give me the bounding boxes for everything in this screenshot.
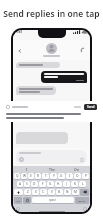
- button[interactable]: Back: [15, 46, 24, 55]
- button[interactable]: A: [17, 181, 23, 187]
- button[interactable]: U: [58, 173, 65, 179]
- button[interactable]: Send: [3, 101, 100, 122]
- staticText: On: [74, 167, 79, 172]
- button[interactable]: B: [56, 189, 63, 195]
- button[interactable]: C: [40, 189, 47, 195]
- staticText: A: [19, 182, 22, 186]
- button[interactable]: T: [42, 173, 49, 179]
- staticText: 123: [16, 199, 21, 202]
- staticText: B: [58, 190, 61, 194]
- button[interactable]: L: [79, 181, 86, 187]
- button[interactable]: D: [31, 181, 38, 187]
- staticText: U: [60, 174, 63, 178]
- staticText: O: [76, 174, 79, 178]
- button[interactable]: Send: [79, 157, 84, 162]
- button[interactable]: S: [24, 181, 30, 187]
- staticText: 9:41: [16, 30, 23, 34]
- button[interactable]: M: [72, 189, 79, 195]
- button[interactable]: G: [47, 181, 54, 187]
- staticText: K: [74, 182, 76, 186]
- button[interactable]: [14, 189, 23, 195]
- staticText: space: [49, 198, 57, 202]
- staticText: G: [49, 182, 52, 186]
- button[interactable]: I: [66, 173, 73, 179]
- button[interactable]: Y: [50, 173, 57, 179]
- button[interactable]: return: [75, 197, 89, 203]
- button[interactable]: N: [64, 189, 71, 195]
- staticText: R: [37, 174, 39, 178]
- staticText: Y: [53, 174, 55, 178]
- button[interactable]: R: [35, 173, 41, 179]
- button[interactable]: space: [32, 197, 74, 203]
- staticText: C: [42, 190, 45, 194]
- button[interactable]: J: [63, 181, 70, 187]
- button[interactable]: K: [71, 181, 78, 187]
- button[interactable]: H: [55, 181, 62, 187]
- button[interactable]: V: [48, 189, 55, 195]
- button[interactable]: F: [39, 181, 46, 187]
- button[interactable]: X: [32, 189, 39, 195]
- staticText: return: [78, 199, 86, 202]
- button[interactable]: I: [14, 166, 39, 173]
- button[interactable]: P: [82, 173, 89, 179]
- staticText: I: [26, 167, 28, 172]
- staticText: Send replies in one tap: [0, 8, 103, 20]
- button[interactable]: Call: [79, 46, 88, 55]
- staticText: W: [23, 174, 26, 178]
- button[interactable]: Send: [84, 104, 97, 110]
- button[interactable]: O: [74, 173, 81, 179]
- button[interactable]: [23, 197, 31, 203]
- button[interactable]: The: [39, 166, 64, 173]
- staticText: H: [57, 182, 60, 186]
- staticText: S: [26, 182, 28, 186]
- button[interactable]: Send: [16, 150, 87, 164]
- staticText: L: [82, 182, 84, 186]
- button[interactable]: Q: [14, 173, 20, 179]
- button[interactable]: E: [28, 173, 34, 179]
- button[interactable]: On: [64, 166, 89, 173]
- staticText: M: [74, 190, 77, 194]
- staticText: J: [66, 182, 67, 186]
- staticText: N: [66, 190, 69, 194]
- staticText: P: [85, 174, 87, 178]
- staticText: Z: [27, 190, 29, 194]
- staticText: T: [45, 174, 47, 178]
- staticText: The: [49, 167, 55, 172]
- staticText: X: [35, 190, 37, 194]
- staticText: V: [51, 190, 53, 194]
- staticText: Send: [87, 105, 95, 109]
- button[interactable]: Z: [24, 189, 31, 195]
- button[interactable]: 123: [14, 197, 22, 203]
- staticText: D: [33, 182, 36, 186]
- staticText: I: [69, 174, 71, 178]
- staticText: E: [30, 174, 32, 178]
- button[interactable]: [80, 189, 89, 195]
- staticText: Q: [16, 174, 19, 178]
- staticText: F: [42, 182, 44, 186]
- button[interactable]: W: [21, 173, 27, 179]
